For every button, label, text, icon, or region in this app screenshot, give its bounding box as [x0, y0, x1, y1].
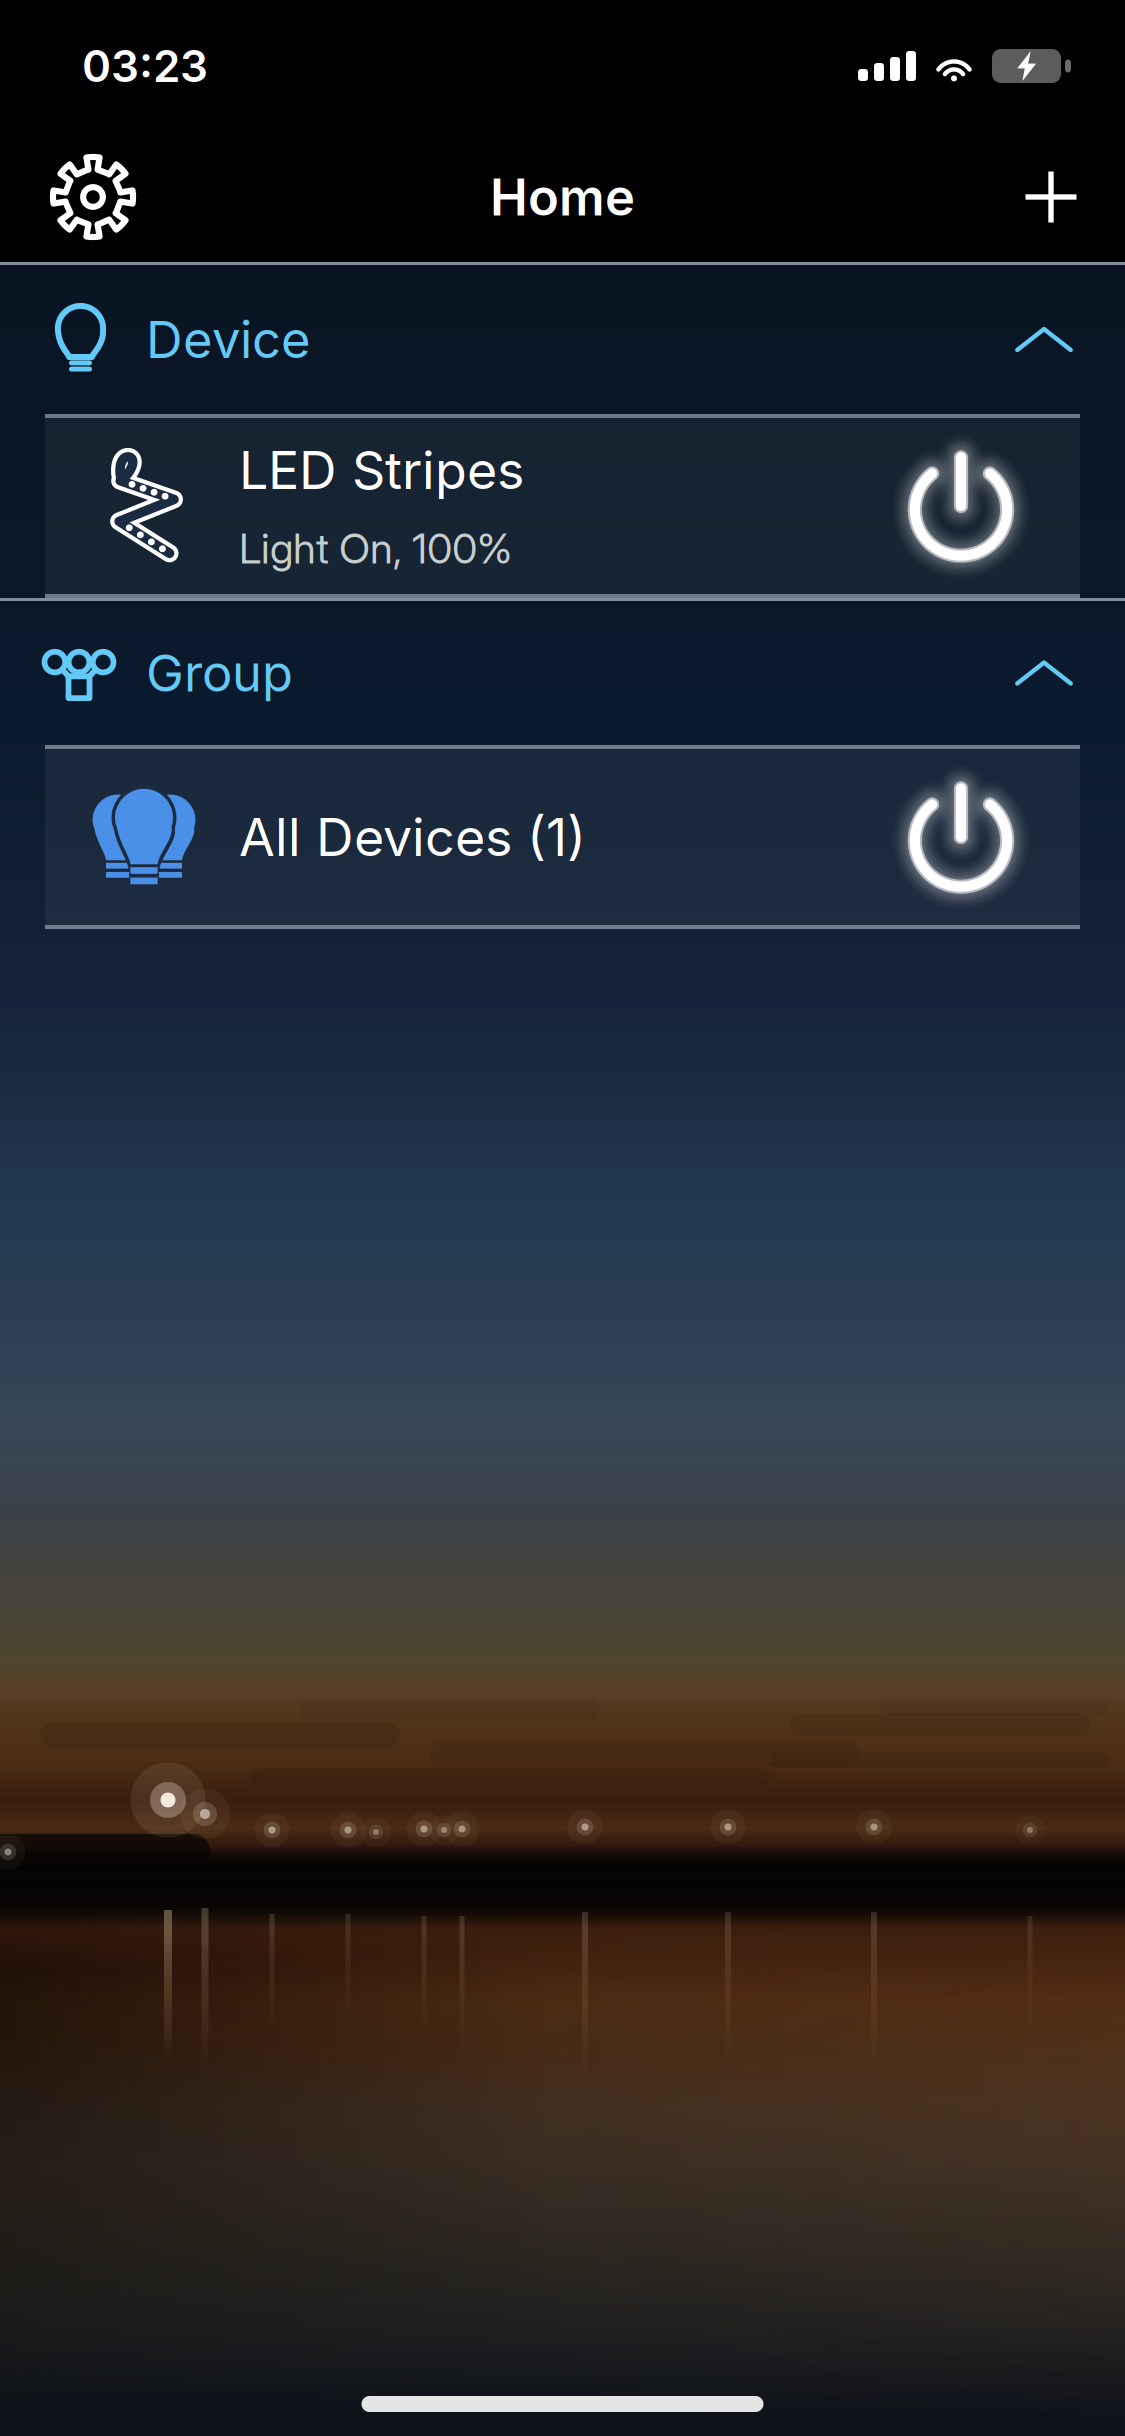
- staticText: 03:23: [82, 39, 208, 93]
- staticText: LED Stripes: [239, 438, 524, 501]
- button[interactable]: Add device: [989, 135, 1113, 259]
- button[interactable]: LED Stripes: [45, 418, 1080, 594]
- staticText: All Devices (1): [239, 805, 586, 868]
- button[interactable]: Settings: [31, 135, 155, 259]
- staticText: Home: [490, 166, 635, 228]
- staticText: Light On, 100%: [239, 523, 512, 573]
- button[interactable]: Group: [0, 601, 1125, 745]
- staticText: Device: [146, 309, 311, 370]
- staticText: Group: [146, 642, 293, 704]
- button[interactable]: Device: [0, 265, 1125, 414]
- button[interactable]: All Devices (1): [45, 749, 1080, 925]
